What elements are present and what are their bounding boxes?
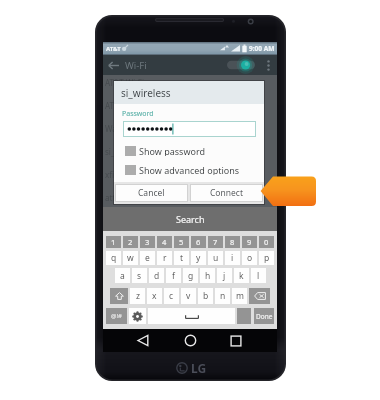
staticText: z bbox=[136, 290, 140, 302]
staticText: c bbox=[169, 290, 174, 302]
button[interactable]: i bbox=[225, 251, 240, 265]
button[interactable]: r bbox=[157, 251, 172, 265]
button[interactable]: b bbox=[198, 288, 213, 304]
staticText: AT&T Wi-Fi bbox=[105, 77, 145, 88]
button[interactable]: o bbox=[242, 251, 257, 265]
staticText: 4 bbox=[162, 237, 167, 247]
staticText: h bbox=[205, 270, 211, 282]
staticText: 9 bbox=[247, 237, 252, 247]
button[interactable]: Backspace bbox=[249, 288, 270, 304]
staticText: n bbox=[220, 290, 226, 302]
staticText: w bbox=[127, 252, 134, 264]
button[interactable]: More options bbox=[262, 55, 275, 75]
button[interactable]: Wi-Fi toggle bbox=[227, 56, 257, 74]
staticText: AT&T bbox=[106, 45, 121, 53]
staticText: 5 bbox=[179, 237, 184, 247]
button[interactable]: y bbox=[191, 251, 206, 265]
staticText: Done bbox=[256, 312, 273, 321]
button[interactable]: Wayport_Access bbox=[105, 123, 277, 134]
button[interactable]: m bbox=[232, 288, 247, 304]
button[interactable]: 6 bbox=[191, 236, 206, 248]
staticText: p bbox=[264, 252, 270, 264]
staticText: a bbox=[120, 270, 125, 282]
staticText: ATTnfm3s bbox=[105, 100, 142, 111]
button[interactable]: Cancel bbox=[115, 184, 188, 202]
button[interactable]: 9 bbox=[242, 236, 257, 248]
button[interactable]: Space bbox=[148, 308, 235, 324]
button[interactable]: 8 bbox=[225, 236, 240, 248]
button[interactable]: Shift bbox=[110, 288, 128, 304]
button[interactable]: 2 bbox=[123, 236, 138, 248]
button[interactable]: f bbox=[166, 268, 181, 283]
button[interactable]: v bbox=[181, 288, 196, 304]
staticText: k bbox=[239, 270, 244, 282]
staticText: Wi-Fi bbox=[125, 59, 147, 72]
button[interactable]: q bbox=[106, 251, 121, 265]
staticText: b bbox=[203, 290, 209, 302]
button[interactable]: Connect bbox=[190, 184, 263, 202]
button[interactable]: Keyboard settings bbox=[129, 308, 146, 324]
button[interactable]: l bbox=[251, 268, 266, 283]
button[interactable]: 1 bbox=[106, 236, 121, 248]
staticText: v bbox=[186, 290, 191, 302]
button[interactable]: xfinitywifi bbox=[105, 169, 277, 180]
button[interactable]: attwifi bbox=[105, 192, 277, 203]
staticText: LG bbox=[191, 360, 207, 376]
staticText: j bbox=[223, 270, 226, 282]
staticText: d bbox=[154, 270, 160, 282]
button[interactable]: c bbox=[164, 288, 179, 304]
staticText: xfinitywifi bbox=[105, 169, 142, 180]
staticText: 6 bbox=[196, 237, 201, 247]
button[interactable]: AT&T Wi-Fi bbox=[105, 77, 277, 88]
button[interactable]: g bbox=[183, 268, 198, 283]
button[interactable]: w bbox=[123, 251, 138, 265]
button[interactable]: ATTnfm3s bbox=[105, 100, 277, 111]
staticText: 3 bbox=[145, 237, 150, 247]
staticText: attwifi bbox=[105, 192, 129, 203]
staticText: g bbox=[188, 270, 194, 282]
staticText: Password bbox=[122, 109, 154, 119]
button[interactable]: Show advanced options bbox=[125, 164, 264, 175]
button[interactable]: Symbols bbox=[106, 308, 127, 324]
button[interactable]: z bbox=[130, 288, 145, 304]
button[interactable]: x bbox=[147, 288, 162, 304]
button[interactable]: h bbox=[200, 268, 215, 283]
button[interactable]: Password field bbox=[123, 121, 256, 137]
staticText: Wayport_Access bbox=[105, 123, 166, 134]
button[interactable]: Back bbox=[129, 329, 157, 352]
button[interactable]: j bbox=[217, 268, 232, 283]
staticText: o bbox=[247, 252, 253, 264]
staticText: t bbox=[180, 252, 184, 264]
staticText: m bbox=[236, 290, 244, 302]
button[interactable]: Show password bbox=[125, 145, 264, 156]
button[interactable]: Next step bbox=[260, 176, 316, 206]
button[interactable]: Done bbox=[254, 308, 274, 324]
staticText: 9:00 AM bbox=[249, 44, 275, 53]
staticText: s bbox=[137, 270, 142, 282]
button[interactable]: 3 bbox=[140, 236, 155, 248]
button[interactable]: e bbox=[140, 251, 155, 265]
button[interactable]: t bbox=[174, 251, 189, 265]
button[interactable]: 0 bbox=[259, 236, 274, 248]
button[interactable]: 7 bbox=[208, 236, 223, 248]
staticText: Search bbox=[176, 213, 205, 225]
button[interactable]: 5 bbox=[174, 236, 189, 248]
button[interactable]: d bbox=[149, 268, 164, 283]
staticText: i bbox=[231, 252, 234, 264]
button[interactable]: 4 bbox=[157, 236, 172, 248]
button[interactable]: k bbox=[234, 268, 249, 283]
button[interactable]: Home bbox=[176, 329, 204, 352]
staticText: 1 bbox=[111, 237, 116, 247]
button[interactable]: si_wireless bbox=[105, 146, 277, 157]
button[interactable]: Search bbox=[103, 207, 277, 231]
button[interactable]: Recent apps bbox=[222, 329, 250, 352]
staticText: 7 bbox=[213, 237, 218, 247]
button[interactable]: a bbox=[115, 268, 130, 283]
button[interactable]: u bbox=[208, 251, 223, 265]
button[interactable]: s bbox=[132, 268, 147, 283]
button[interactable]: n bbox=[215, 288, 230, 304]
button[interactable]: Back bbox=[103, 55, 123, 75]
staticText: Show password bbox=[139, 145, 205, 156]
button[interactable]: p bbox=[259, 251, 274, 265]
